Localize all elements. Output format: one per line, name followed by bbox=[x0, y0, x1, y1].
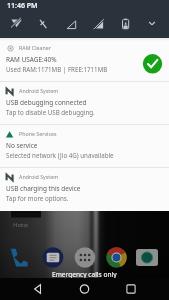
staticText: Tap to disable USB debugging. bbox=[6, 108, 95, 116]
staticText: USB charging this device bbox=[6, 184, 81, 193]
button[interactable]: Android System bbox=[0, 167, 169, 210]
staticText: Hotst bbox=[13, 221, 29, 229]
staticText: Tap for more options. bbox=[6, 194, 69, 202]
staticText: Android System bbox=[19, 173, 59, 180]
staticText: Android System bbox=[19, 87, 59, 94]
staticText: RAM Cleaner bbox=[19, 44, 51, 51]
staticText: Selected network (Jio 4G) unavailable bbox=[6, 151, 114, 159]
staticText: USB debugging connected bbox=[6, 98, 87, 107]
staticText: Phone Services bbox=[19, 130, 57, 137]
button[interactable]: Android System bbox=[0, 81, 169, 124]
staticText: 11:46 PM bbox=[7, 1, 38, 11]
button[interactable]: RAM Cleaner bbox=[0, 38, 169, 81]
staticText: RAM USAGE:40% bbox=[6, 55, 57, 64]
staticText: No service bbox=[6, 141, 38, 150]
staticText: Emergency calls only bbox=[52, 270, 117, 279]
staticText: Used RAM:1171MB | FREE:1711MB bbox=[6, 65, 108, 73]
button[interactable]: Phone Services bbox=[0, 124, 169, 167]
